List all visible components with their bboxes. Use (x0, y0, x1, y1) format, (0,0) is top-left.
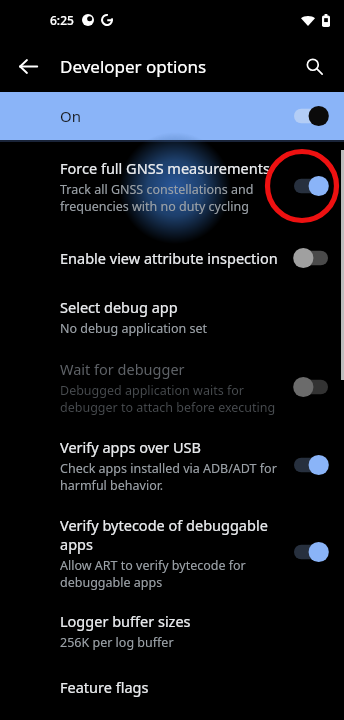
staticText: Debugged application waits for debugger … (60, 382, 276, 415)
staticText: 6:25 (50, 12, 74, 28)
staticText: No debug application set (60, 320, 208, 337)
button[interactable]: Enable view attribute inspection (0, 230, 344, 286)
button[interactable]: Select debug app (0, 286, 344, 348)
staticText: Logger buffer sizes (60, 611, 191, 631)
staticText: Enable view attribute inspection (60, 248, 278, 268)
button[interactable]: Feature flags (0, 662, 344, 712)
button[interactable]: Wait for debugger (0, 348, 344, 426)
button[interactable]: Off (294, 376, 328, 398)
staticText: 256K per log buffer (60, 634, 174, 651)
staticText: Verify apps over USB (60, 437, 201, 457)
staticText: Wait for debugger (60, 359, 185, 379)
button[interactable]: Verify apps over USB (0, 426, 344, 504)
button[interactable]: On (294, 541, 328, 563)
button[interactable]: Logger buffer sizes (0, 600, 344, 662)
button[interactable]: On (294, 175, 328, 197)
button[interactable]: On (294, 454, 328, 476)
staticText: Allow ART to verify bytecode for debugga… (60, 557, 246, 590)
staticText: Check apps installed via ADB/ADT for har… (60, 460, 277, 493)
button[interactable]: Back (10, 48, 46, 84)
button[interactable]: Search (296, 48, 332, 84)
staticText: Force full GNSS measurements (60, 158, 270, 178)
staticText: Verify bytecode of debuggable apps (60, 515, 268, 554)
button[interactable]: Force full GNSS measurements (0, 142, 344, 230)
button[interactable]: On (0, 92, 344, 140)
staticText: Select debug app (60, 297, 178, 317)
button[interactable]: Verify bytecode of debuggable apps (0, 504, 344, 600)
staticText: Feature flags (60, 677, 149, 697)
button[interactable]: On (294, 105, 328, 127)
staticText: On (60, 106, 294, 126)
button[interactable]: Off (294, 247, 328, 269)
staticText: Track all GNSS constellations and freque… (60, 181, 254, 214)
staticText: Developer options (60, 55, 207, 78)
